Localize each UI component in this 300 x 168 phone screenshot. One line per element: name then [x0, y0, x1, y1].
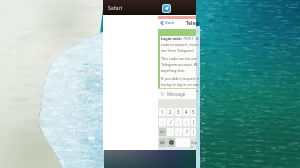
staticText: trying to log in on ano: [161, 82, 199, 87]
staticText: anything else.: [161, 68, 186, 73]
staticText: Пере: [191, 141, 198, 149]
button[interactable]: 5: [191, 108, 196, 116]
staticText: Back: [165, 20, 175, 26]
button[interactable]: -: [159, 118, 166, 126]
staticText: ?: [186, 129, 188, 135]
button[interactable]: 2: [167, 108, 174, 116]
staticText: code to anyone, even: [161, 42, 198, 47]
staticText: Safari: [108, 5, 123, 12]
button[interactable]: 1: [159, 108, 166, 116]
staticText: :: [178, 119, 180, 125]
staticText: /: [170, 119, 172, 125]
button[interactable]: 4: [183, 108, 190, 116]
button[interactable]: :: [175, 118, 182, 126]
button[interactable]: ;: [183, 118, 190, 126]
staticText: simply ignore this me: [161, 88, 199, 93]
button[interactable]: (: [191, 118, 196, 126]
staticText: 2: [169, 109, 172, 115]
button[interactable]: Telegram: [162, 4, 171, 13]
staticText: ,: [178, 129, 180, 135]
staticText: This code can be use: [161, 56, 197, 61]
staticText: 1: [161, 109, 164, 115]
button[interactable]: .: [167, 128, 174, 136]
staticText: Telegr: [186, 20, 201, 26]
staticText: If you didn't request it: [161, 76, 199, 81]
button[interactable]: ?: [183, 128, 190, 136]
button[interactable]: !: [191, 128, 196, 136]
staticText: (: [193, 119, 195, 125]
staticText: Message: [167, 91, 186, 97]
button[interactable]: 3: [175, 108, 182, 116]
staticText: are from Telegram!: [161, 48, 195, 53]
button[interactable]: ABC: [159, 138, 166, 147]
button[interactable]: /: [167, 118, 174, 126]
staticText: Login code:: [161, 36, 183, 41]
staticText: 5: [192, 109, 195, 115]
staticText: #+=: [160, 130, 166, 134]
staticText: 3: [177, 109, 180, 115]
staticText: 4: [185, 109, 188, 115]
staticText: .: [170, 129, 172, 135]
button[interactable]: #+=: [159, 128, 166, 136]
staticText: ABC: [160, 141, 166, 145]
staticText: -: [162, 119, 164, 125]
button[interactable]: Back: [160, 20, 175, 26]
button[interactable]: Emoji keyboard: [167, 138, 175, 147]
staticText: 75551. Do: [183, 36, 199, 41]
button[interactable]: ,: [175, 128, 182, 136]
staticText: !: [193, 129, 195, 135]
staticText: Telegram account. W: [161, 62, 198, 67]
staticText: ;: [186, 119, 188, 125]
